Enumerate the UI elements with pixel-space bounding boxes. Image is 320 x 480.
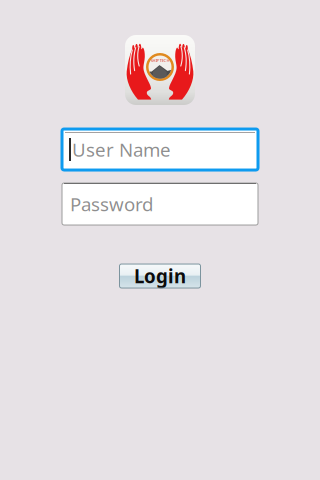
staticText: User Name <box>72 137 171 162</box>
button[interactable]: User Name <box>62 129 258 170</box>
button[interactable]: Password <box>62 183 258 225</box>
button[interactable]: Login <box>119 264 200 288</box>
staticText: SHIP TECH <box>150 58 169 63</box>
staticText: Password <box>70 192 153 216</box>
staticText: Login <box>134 264 186 288</box>
